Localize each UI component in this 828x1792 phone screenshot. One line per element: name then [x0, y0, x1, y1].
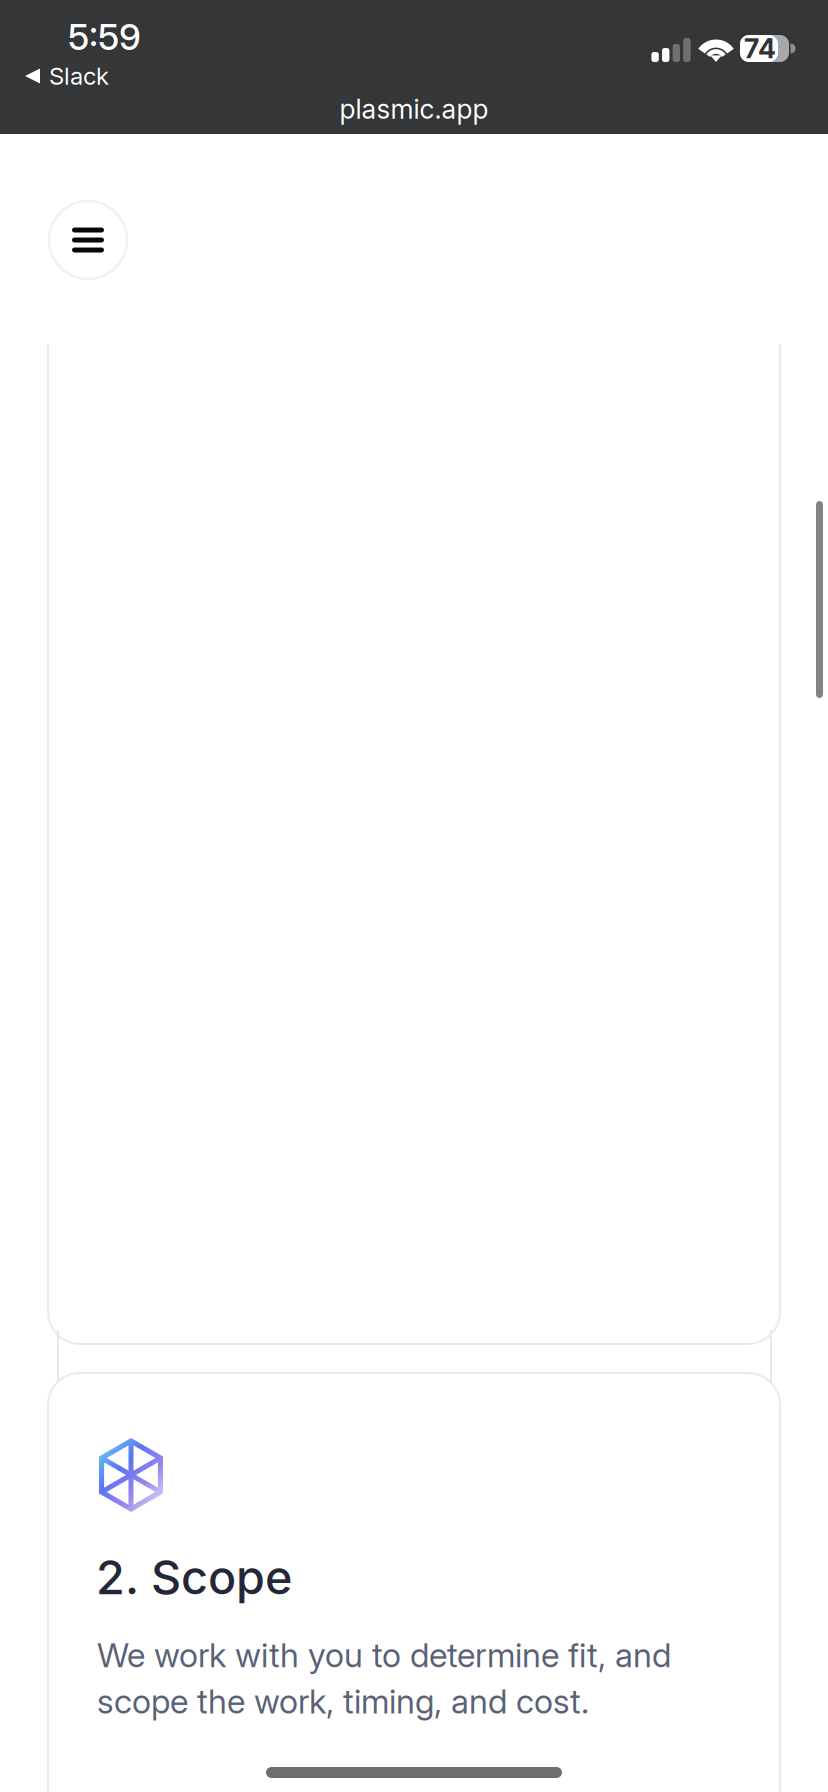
button[interactable]: Menu [48, 200, 128, 280]
staticText: 5:59 [68, 15, 141, 59]
staticText: plasmic.app [339, 93, 488, 125]
staticText: We work with you to determine fit, and s… [97, 1632, 671, 1724]
staticText: Slack [49, 61, 109, 90]
staticText: 2. Scope [96, 1549, 292, 1605]
staticText: 74 [744, 32, 776, 65]
button[interactable]: Slack [25, 62, 225, 90]
